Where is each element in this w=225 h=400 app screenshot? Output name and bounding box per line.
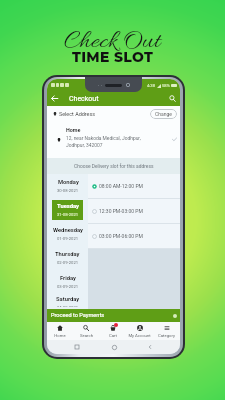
staticText: 30-08-2021 — [57, 188, 79, 193]
button[interactable]: Home — [107, 340, 121, 354]
staticText: 08:00 AM-12:00 PM — [99, 183, 143, 189]
staticText: 04-09-2021 — [57, 305, 79, 307]
staticText: Check Out — [64, 25, 161, 59]
staticText: Tuesday — [57, 203, 79, 210]
button[interactable]: 08:00 AM-12:00 PM — [92, 174, 180, 198]
staticText: Home — [54, 333, 66, 338]
staticText: Cart — [109, 333, 117, 338]
staticText: Choose Delivery slot for this address — [74, 163, 154, 169]
staticText: Saturday — [56, 296, 80, 303]
staticText: Change — [155, 111, 172, 117]
staticText: 12:30 PM-03:00 PM — [99, 208, 143, 214]
staticText: 58% — [162, 83, 170, 88]
staticText: 03-09-2021 — [57, 284, 79, 289]
button[interactable]: Back — [143, 340, 157, 354]
button[interactable]: Thursday — [52, 248, 83, 268]
button[interactable]: Saturday — [52, 296, 83, 307]
button[interactable]: Proceed to Payments — [47, 309, 180, 322]
staticText: Checkout — [69, 95, 99, 103]
button[interactable]: Home — [47, 121, 180, 158]
staticText: 31-08-2021 — [57, 212, 79, 217]
button[interactable]: Friday — [52, 272, 83, 292]
staticText: Search — [80, 333, 93, 338]
staticText: 03:00 PM-06:00 PM — [99, 233, 143, 239]
button[interactable]: Monday — [52, 176, 83, 196]
staticText: Home — [66, 127, 81, 133]
button[interactable]: My Account — [126, 322, 153, 340]
staticText: Wednesday — [53, 227, 83, 234]
button[interactable]: Cart — [99, 322, 126, 340]
staticText: Friday — [60, 275, 77, 282]
button[interactable]: Wednesday — [52, 224, 83, 244]
button[interactable]: Search — [167, 93, 178, 104]
staticText: TIME SLOT — [72, 48, 154, 65]
button[interactable]: Change — [150, 109, 177, 119]
staticText: Select Address — [59, 111, 95, 117]
button[interactable]: Search — [73, 322, 99, 340]
button[interactable]: 03:00 PM-06:00 PM — [92, 224, 180, 248]
button[interactable]: 12:30 PM-03:00 PM — [92, 199, 180, 223]
staticText: Category — [158, 333, 175, 338]
staticText: My Account — [128, 333, 151, 338]
staticText: 02-09-2021 — [57, 260, 79, 265]
button[interactable]: Tuesday — [52, 200, 83, 220]
staticText: Jodhpur, 342007 — [66, 142, 103, 148]
button[interactable]: Back — [49, 93, 60, 104]
button[interactable]: Recent apps — [70, 340, 84, 354]
staticText: 12, near Nakoda Medical, Jodhpur, — [66, 135, 141, 141]
staticText: 4:38 — [147, 83, 156, 88]
button[interactable]: Home — [47, 322, 73, 340]
staticText: Monday — [58, 179, 79, 186]
button[interactable]: Category — [153, 322, 180, 340]
staticText: Proceed to Payments — [51, 312, 105, 319]
staticText: 01-09-2021 — [57, 236, 79, 241]
staticText: Thursday — [55, 251, 80, 258]
